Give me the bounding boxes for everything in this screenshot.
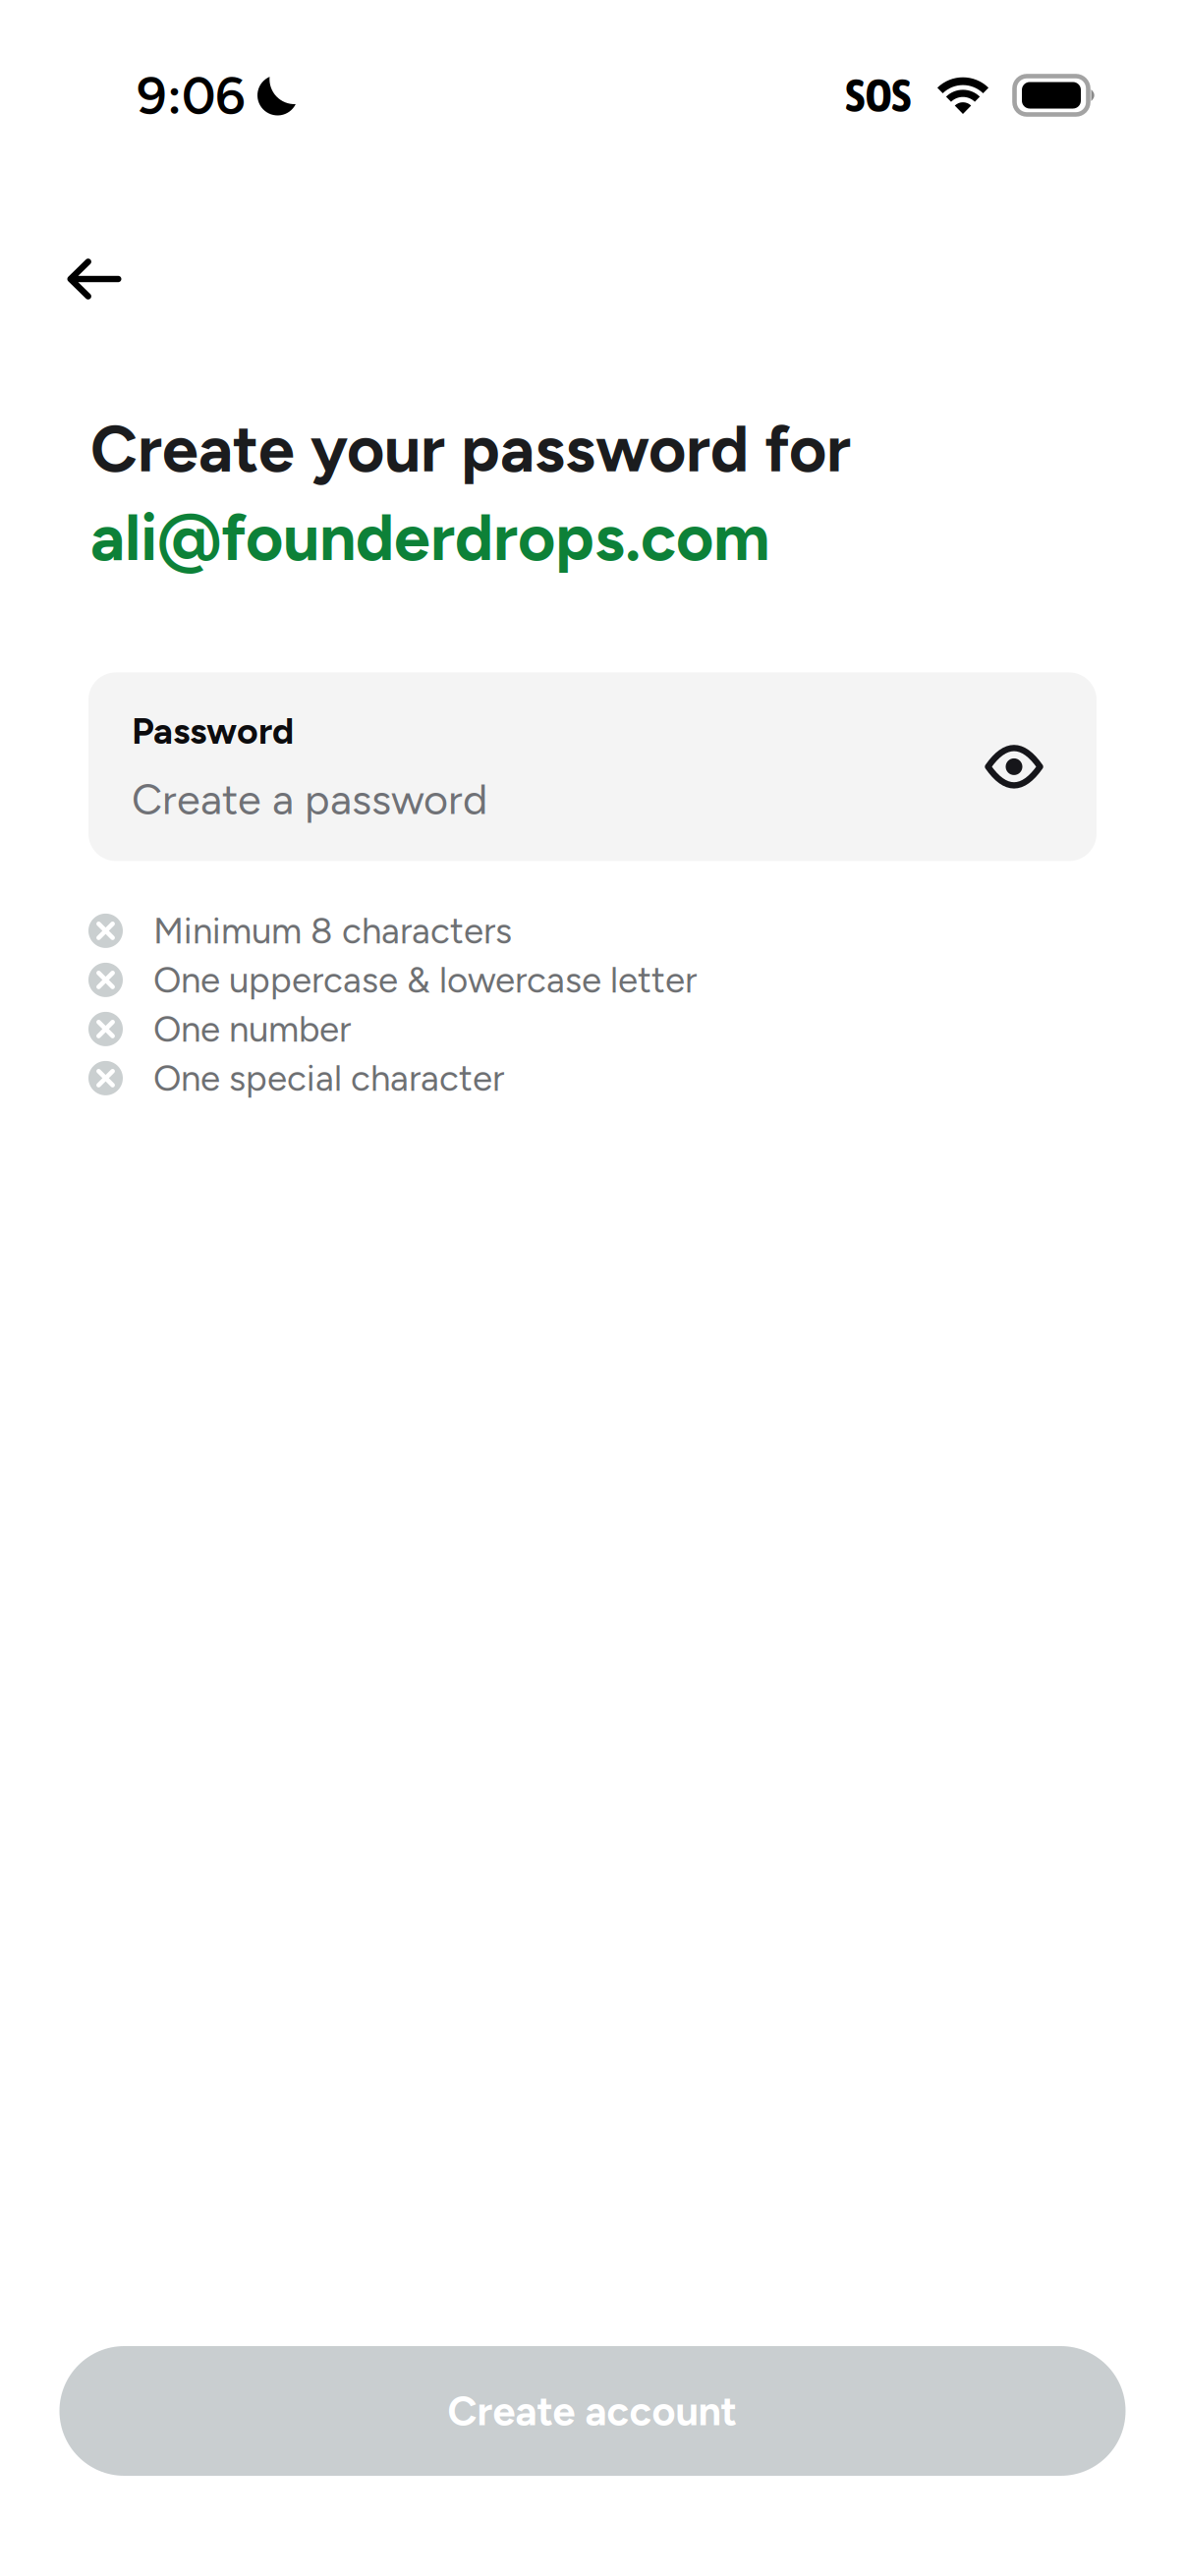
staticText: SOS bbox=[846, 69, 911, 122]
staticText: 9:06 bbox=[137, 64, 246, 127]
staticText: One number bbox=[153, 1007, 351, 1051]
button[interactable]: Back bbox=[47, 237, 141, 321]
button[interactable]: Create account bbox=[59, 2346, 1126, 2476]
button[interactable]: Show password bbox=[973, 725, 1055, 808]
staticText: ali@founderdrops.com bbox=[90, 498, 770, 576]
staticText: Create your password for bbox=[90, 410, 851, 487]
staticText: Create account bbox=[448, 2387, 737, 2435]
staticText: Create a password bbox=[132, 774, 487, 824]
staticText: One special character bbox=[153, 1057, 504, 1100]
staticText: Minimum 8 characters bbox=[153, 909, 512, 952]
staticText: One uppercase & lowercase letter bbox=[153, 958, 697, 1002]
staticText: Password bbox=[132, 709, 294, 753]
